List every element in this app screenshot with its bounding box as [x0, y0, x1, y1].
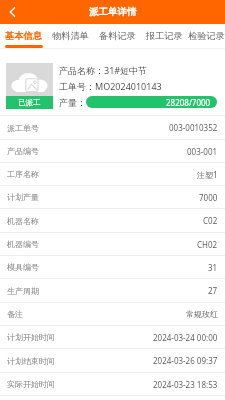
staticText: 物料清单: [52, 30, 89, 42]
button[interactable]: 产品编号: [0, 140, 225, 162]
button[interactable]: 报工记录: [141, 24, 188, 48]
staticText: 备料记录: [99, 30, 136, 42]
staticText: CH02: [197, 239, 218, 250]
staticText: 工序名称: [7, 169, 39, 179]
button[interactable]: 机器编号: [0, 233, 225, 255]
staticText: 27: [208, 285, 218, 296]
staticText: 实际开始时间: [7, 379, 55, 389]
staticText: 产品编号: [7, 146, 39, 156]
button[interactable]: Back: [0, 0, 24, 24]
staticText: 工单号：MO2024010143: [59, 80, 162, 92]
staticText: 003-001: [187, 146, 218, 157]
staticText: 已派工: [18, 98, 41, 107]
button[interactable]: 生产周期: [0, 279, 225, 302]
button[interactable]: 派工单号: [0, 116, 225, 139]
button[interactable]: 工序名称: [0, 163, 225, 185]
button[interactable]: 计划产量: [0, 186, 225, 208]
staticText: 注塑1: [197, 169, 218, 180]
staticText: 产量：: [59, 97, 86, 108]
button[interactable]: 物料清单: [47, 24, 94, 48]
staticText: 计划产量: [7, 192, 39, 202]
staticText: 计划开始时间: [7, 332, 55, 342]
button[interactable]: 检验记录: [188, 24, 225, 48]
staticText: 派工单详情: [89, 6, 137, 18]
staticText: 7000: [199, 192, 218, 203]
staticText: C02: [203, 215, 218, 226]
button[interactable]: 机器名称: [0, 209, 225, 232]
staticText: 机器名称: [7, 216, 39, 226]
staticText: 产品名称：31#短中节: [59, 64, 148, 76]
button[interactable]: 实际开始时间: [0, 373, 225, 395]
button[interactable]: 备料记录: [94, 24, 141, 48]
staticText: 常规玫红: [186, 309, 218, 319]
staticText: 31: [208, 262, 218, 273]
staticText: 28208/7000: [166, 97, 211, 108]
staticText: 003-0010352: [169, 122, 218, 133]
button[interactable]: 计划结束时间: [0, 349, 225, 372]
staticText: 检验记录: [188, 30, 225, 42]
button[interactable]: 基本信息: [0, 24, 47, 48]
staticText: 机器编号: [7, 239, 39, 249]
button[interactable]: 计划开始时间: [0, 326, 225, 348]
staticText: 2024-03-26 09:37: [153, 355, 218, 366]
staticText: 基本信息: [5, 30, 42, 42]
staticText: 2024-03-24 00:00: [153, 332, 218, 343]
staticText: 生产周期: [7, 286, 39, 296]
button[interactable]: 备注: [0, 303, 225, 325]
staticText: 模具编号: [7, 262, 39, 272]
staticText: 计划结束时间: [7, 356, 55, 366]
staticText: 报工记录: [146, 30, 183, 42]
staticText: 派工单号: [7, 123, 39, 133]
staticText: 备注: [7, 309, 23, 319]
staticText: 2024-03-23 18:53: [153, 379, 218, 390]
button[interactable]: 模具编号: [0, 256, 225, 278]
